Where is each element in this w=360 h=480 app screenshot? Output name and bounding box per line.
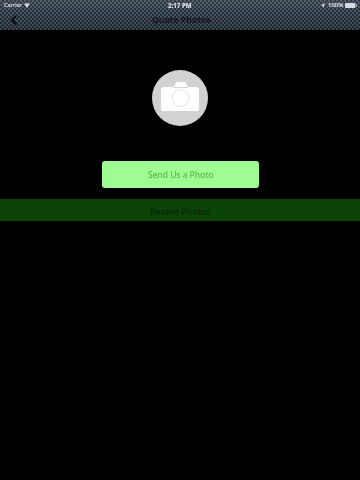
button[interactable]: Send Us a Photo [102,161,259,188]
staticText: 100% [328,1,344,9]
staticText: Quote Photos [152,14,211,25]
staticText: 2:17 PM [168,1,192,9]
staticText: Send Us a Photo [148,169,214,181]
button[interactable]: Back [0,14,30,25]
staticText: Carrier [4,1,23,9]
staticText: Recent Photos [150,205,211,217]
button[interactable]: Recent Photos [0,199,360,221]
button[interactable]: Take photo [152,70,208,126]
